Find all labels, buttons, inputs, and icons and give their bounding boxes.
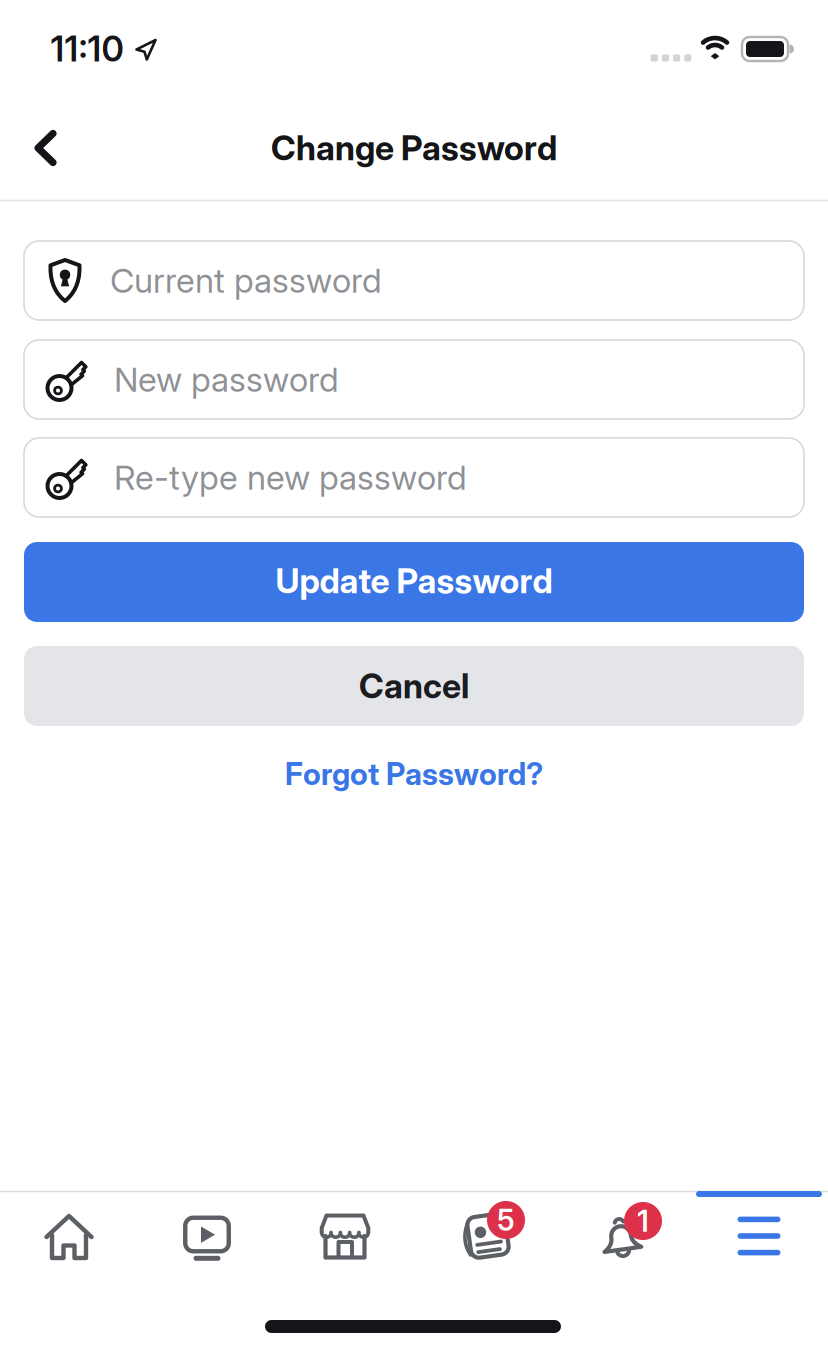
staticText: Cancel bbox=[359, 665, 469, 706]
staticText: 1 bbox=[637, 1203, 649, 1239]
staticText: New password bbox=[114, 359, 339, 400]
staticText: Current password bbox=[110, 260, 382, 301]
button[interactable]: News bbox=[414, 1190, 552, 1282]
button[interactable]: Back bbox=[32, 128, 60, 167]
button[interactable]: Cancel bbox=[24, 646, 804, 726]
button[interactable]: Notifications bbox=[552, 1190, 690, 1282]
staticText: 5 bbox=[497, 1202, 515, 1238]
staticText: Re-type new password bbox=[114, 457, 467, 498]
button[interactable]: Re-type new password bbox=[24, 438, 804, 517]
button[interactable]: Update Password bbox=[24, 542, 804, 622]
button[interactable]: Home bbox=[0, 1190, 138, 1282]
button[interactable]: Forgot Password? bbox=[285, 755, 543, 792]
button[interactable]: New password bbox=[24, 340, 804, 419]
button[interactable]: Marketplace bbox=[276, 1190, 414, 1282]
button[interactable]: Current password bbox=[24, 241, 804, 320]
staticText: Change Password bbox=[271, 127, 557, 168]
button[interactable]: Watch bbox=[138, 1190, 276, 1282]
staticText: Forgot Password? bbox=[285, 755, 543, 792]
staticText: Update Password bbox=[275, 560, 552, 601]
button[interactable]: Menu bbox=[690, 1190, 828, 1282]
staticText: 11:10 bbox=[50, 28, 123, 70]
